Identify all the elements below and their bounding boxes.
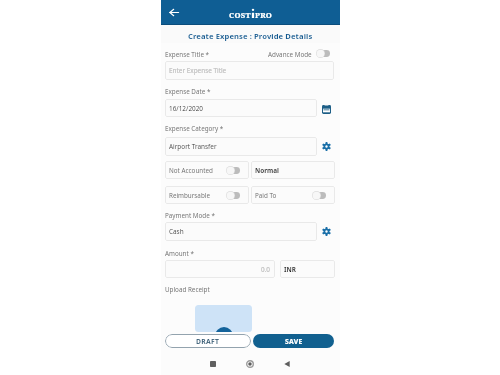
button[interactable]: 16/12/2020 bbox=[165, 99, 317, 117]
button[interactable]: Paid To bbox=[251, 186, 335, 204]
button[interactable]: Back bbox=[281, 358, 293, 370]
button[interactable]: Category settings bbox=[321, 141, 332, 152]
button[interactable]: Cash bbox=[165, 222, 317, 241]
staticText: Payment Mode * bbox=[165, 211, 215, 220]
staticText: Expense Category * bbox=[165, 124, 224, 133]
button[interactable]: Home bbox=[244, 358, 256, 370]
staticText: Advance Mode bbox=[268, 50, 312, 59]
button[interactable] bbox=[226, 191, 240, 200]
staticText: Normal bbox=[255, 166, 280, 175]
button[interactable]: Payment settings bbox=[321, 226, 332, 237]
button[interactable]: DRAFT bbox=[165, 334, 251, 348]
button[interactable]: Not Accounted bbox=[165, 161, 249, 179]
button[interactable] bbox=[316, 49, 330, 58]
button[interactable] bbox=[312, 191, 326, 200]
staticText: PRO bbox=[255, 10, 273, 20]
staticText: Cash bbox=[169, 227, 184, 236]
staticText: DRAFT bbox=[196, 337, 220, 346]
button[interactable]: Reimbursable bbox=[165, 186, 249, 204]
staticText: COST bbox=[229, 10, 251, 20]
staticText: Amount * bbox=[165, 249, 194, 258]
staticText: SAVE bbox=[285, 337, 303, 346]
staticText: Expense Title * bbox=[165, 50, 210, 59]
button[interactable]: Airport Transfer bbox=[165, 137, 317, 156]
staticText: Airport Transfer bbox=[169, 142, 217, 151]
staticText: Upload Receipt bbox=[165, 285, 210, 294]
button[interactable] bbox=[226, 166, 240, 175]
button[interactable]: Back bbox=[167, 6, 180, 19]
staticText: Expense Date * bbox=[165, 87, 211, 96]
staticText: Not Accounted bbox=[169, 166, 213, 175]
staticText: Reimbursable bbox=[169, 191, 210, 200]
staticText: Create Expense : Provide Details bbox=[188, 31, 313, 41]
staticText: 0.0 bbox=[261, 265, 271, 274]
button[interactable]: Normal bbox=[251, 161, 335, 179]
button[interactable]: Upload receipt bbox=[195, 305, 252, 332]
button[interactable]: Enter Expense Title bbox=[165, 61, 334, 80]
staticText: INR bbox=[284, 265, 296, 274]
staticText: Paid To bbox=[255, 191, 277, 200]
button[interactable]: SAVE bbox=[253, 334, 334, 348]
staticText: 16/12/2020 bbox=[169, 104, 203, 113]
staticText: Enter Expense Title bbox=[169, 66, 227, 75]
button[interactable]: 0.0 bbox=[165, 260, 275, 278]
button[interactable]: INR bbox=[280, 260, 335, 278]
button[interactable]: Recent apps bbox=[207, 358, 219, 370]
button[interactable]: Pick date bbox=[321, 103, 332, 114]
